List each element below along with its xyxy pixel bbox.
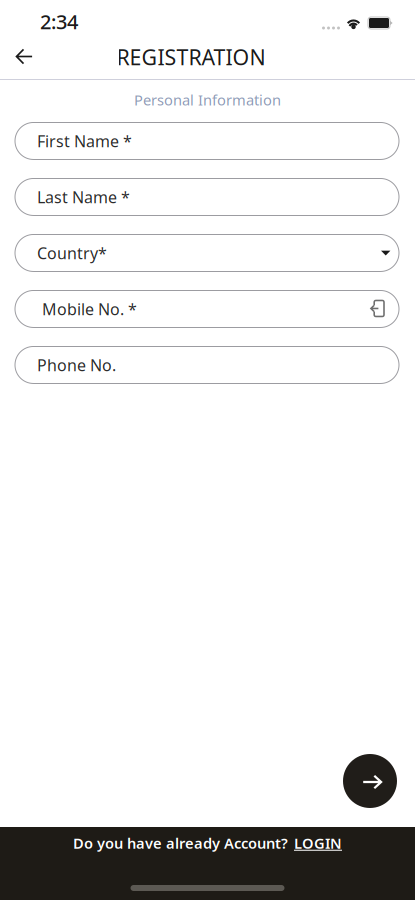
staticText: REGISTRATION: [116, 43, 265, 71]
staticText: Do you have already Account?: [73, 833, 288, 853]
button[interactable]: First Name *: [15, 122, 399, 159]
button[interactable]: Do you have already Account?: [0, 828, 415, 858]
staticText: LOGIN: [294, 833, 342, 853]
button[interactable]: Continue: [343, 754, 397, 808]
button[interactable]: Back: [4, 36, 44, 76]
staticText: 2:34: [40, 8, 78, 35]
staticText: Personal Information: [134, 90, 281, 109]
button[interactable]: Mobile No. *: [15, 290, 399, 327]
button[interactable]: Phone No.: [15, 346, 399, 383]
staticText: First Name *: [37, 130, 132, 152]
button[interactable]: Country*: [15, 234, 399, 271]
staticText: Last Name *: [37, 186, 130, 208]
staticText: Phone No.: [37, 354, 116, 376]
staticText: Country*: [37, 242, 107, 264]
staticText: Mobile No. *: [42, 298, 137, 320]
button[interactable]: Last Name *: [15, 178, 399, 215]
